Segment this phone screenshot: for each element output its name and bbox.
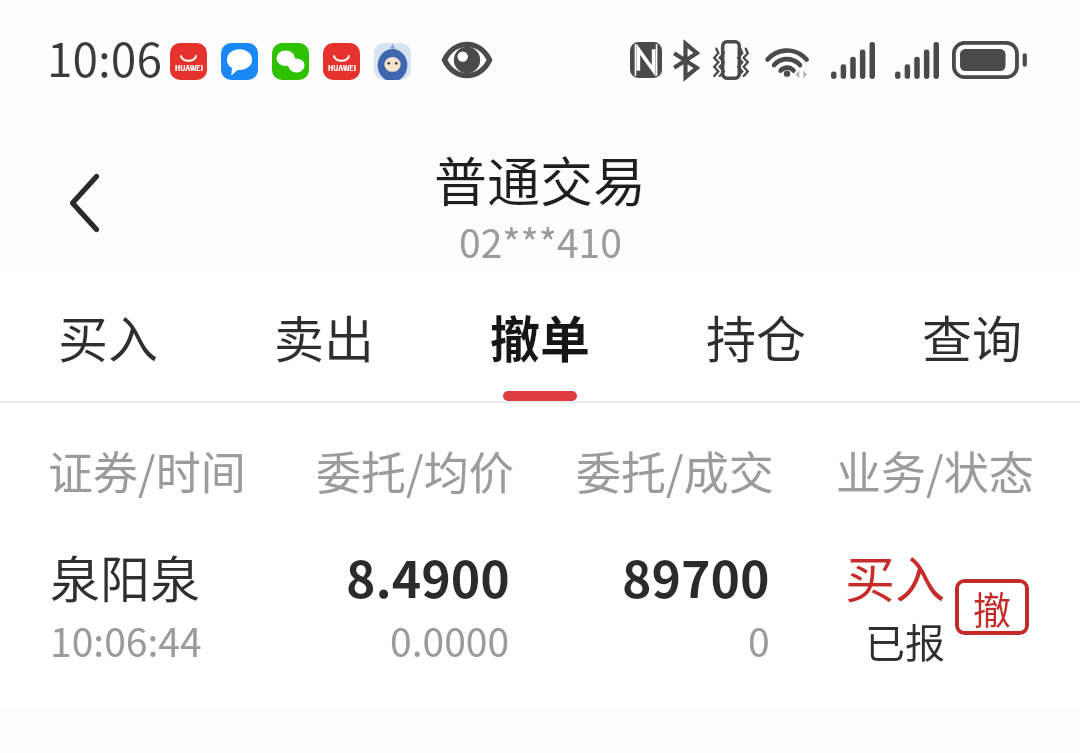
staticText: 10:06:44 — [50, 612, 202, 668]
staticText: HUAWEI — [328, 63, 356, 73]
staticText: 泉阳泉 — [50, 540, 200, 612]
staticText: 02***410 — [459, 213, 622, 269]
button[interactable]: 买入 — [0, 272, 216, 402]
button[interactable]: 撤单 — [432, 272, 648, 402]
staticText: 业务/状态 — [836, 438, 1034, 503]
staticText: HUAWEI — [175, 63, 203, 73]
button[interactable]: 撤单 Cancel order — [955, 579, 1029, 635]
staticText: 0.0000 — [390, 612, 510, 668]
staticText: 委托/均价 — [316, 438, 514, 503]
staticText: 10:06 — [47, 24, 162, 91]
staticText: 买入 — [58, 300, 158, 372]
staticText: 买入 — [845, 540, 945, 612]
staticText: 89700 — [622, 540, 770, 612]
staticText: 证券/时间 — [48, 438, 246, 503]
button[interactable]: Eye protection mode — [443, 40, 491, 80]
staticText: 0 — [748, 612, 770, 668]
staticText: 8.4900 — [346, 540, 510, 612]
button[interactable]: 泉阳泉 — [0, 510, 1080, 680]
staticText: 持仓 — [706, 300, 806, 372]
button[interactable]: 查询 — [864, 272, 1080, 402]
staticText: 卖出 — [274, 300, 374, 372]
staticText: 查询 — [922, 300, 1022, 372]
staticText: 普通交易 — [434, 141, 646, 218]
staticText: 撤 — [973, 580, 1012, 635]
staticText: 委托/成交 — [576, 438, 774, 503]
button[interactable]: 持仓 — [648, 272, 864, 402]
button[interactable]: 卖出 — [216, 272, 432, 402]
staticText: 已报 — [865, 612, 945, 670]
staticText: 撤单 — [490, 300, 590, 372]
button[interactable]: Back — [38, 157, 130, 249]
